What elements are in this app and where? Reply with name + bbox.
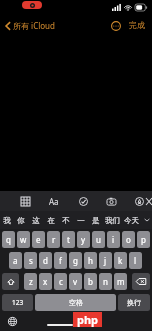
button[interactable]: Aa — [46, 193, 62, 210]
staticText: a — [13, 255, 18, 266]
staticText: 一 — [77, 216, 85, 225]
staticText: 在 — [47, 216, 55, 225]
staticText: 空格 — [69, 298, 83, 307]
button[interactable]: a — [9, 252, 22, 269]
button[interactable]: 我 — [0, 211, 14, 229]
button[interactable]: Close — [146, 194, 152, 208]
button[interactable]: Switch keyboard — [6, 315, 18, 327]
button[interactable]: 今天 — [122, 211, 141, 229]
button[interactable]: r — [47, 231, 60, 248]
button[interactable]: t — [62, 231, 75, 248]
staticText: z — [29, 276, 33, 287]
button[interactable]: s — [24, 252, 37, 269]
staticText: 你 — [17, 216, 25, 225]
button[interactable]: 我们 — [103, 211, 122, 229]
button[interactable]: 这 — [28, 211, 43, 229]
button[interactable]: y — [77, 231, 90, 248]
button[interactable]: p — [137, 231, 150, 248]
button[interactable]: g — [69, 252, 82, 269]
staticText: u — [96, 234, 101, 245]
button[interactable]: m — [114, 273, 127, 290]
staticText: 我 — [3, 216, 11, 225]
button[interactable]: w — [17, 231, 30, 248]
staticText: 所有 iCloud — [13, 20, 55, 31]
button[interactable]: j — [99, 252, 112, 269]
staticText: l — [134, 255, 137, 266]
button[interactable]: l — [129, 252, 142, 269]
button[interactable]: More options — [109, 19, 122, 32]
staticText: j — [104, 255, 107, 266]
staticText: 完成 — [129, 20, 145, 30]
staticText: w — [20, 234, 27, 245]
button[interactable]: Shift — [2, 273, 19, 290]
staticText: c — [59, 276, 63, 287]
button[interactable]: Backspace — [132, 273, 150, 290]
button[interactable]: x — [39, 273, 52, 290]
staticText: e — [36, 234, 41, 245]
button[interactable]: f — [54, 252, 67, 269]
button[interactable]: Table — [18, 194, 32, 208]
button[interactable]: Camera — [104, 194, 118, 208]
button[interactable]: Checklist — [76, 194, 90, 208]
staticText: n — [103, 276, 108, 287]
staticText: f — [59, 255, 62, 266]
button[interactable]: 在 — [43, 211, 58, 229]
other: php logo — [73, 312, 102, 327]
button[interactable]: 完成 — [127, 18, 147, 32]
staticText: y — [81, 234, 86, 245]
staticText: 换行 — [127, 298, 141, 307]
staticText: t — [67, 234, 70, 245]
staticText: 是 — [92, 216, 100, 225]
button[interactable]: u — [92, 231, 105, 248]
button[interactable]: c — [54, 273, 67, 290]
staticText: i — [112, 234, 115, 245]
staticText: o — [126, 234, 131, 245]
staticText: h — [88, 255, 93, 266]
button[interactable]: k — [114, 252, 127, 269]
button[interactable]: q — [2, 231, 15, 248]
button[interactable]: Expand suggestions — [141, 211, 152, 229]
button[interactable]: e — [32, 231, 45, 248]
other: Recording indicator — [22, 1, 42, 9]
staticText: q — [6, 234, 11, 245]
staticText: Aa — [49, 196, 59, 207]
button[interactable]: 空格 — [35, 294, 116, 311]
staticText: x — [43, 276, 48, 287]
button[interactable]: Markup — [132, 194, 146, 208]
button[interactable]: 不 — [58, 211, 73, 229]
button[interactable]: 一 — [73, 211, 88, 229]
button[interactable]: 是 — [88, 211, 103, 229]
button[interactable]: b — [84, 273, 97, 290]
staticText: 我们 — [105, 216, 120, 225]
staticText: s — [29, 255, 33, 266]
staticText: m — [117, 276, 125, 287]
staticText: d — [43, 255, 48, 266]
staticText: k — [118, 255, 123, 266]
staticText: b — [88, 276, 93, 287]
button[interactable]: z — [24, 273, 37, 290]
button[interactable]: v — [69, 273, 82, 290]
staticText: g — [73, 255, 78, 266]
button[interactable]: d — [39, 252, 52, 269]
staticText: p — [141, 234, 146, 245]
staticText: 今天 — [124, 216, 139, 225]
button[interactable]: i — [107, 231, 120, 248]
staticText: 123 — [12, 298, 24, 307]
button[interactable]: 123 — [2, 294, 33, 311]
staticText: php — [77, 312, 99, 327]
button[interactable]: o — [122, 231, 135, 248]
button[interactable]: 你 — [14, 211, 28, 229]
button[interactable]: n — [99, 273, 112, 290]
button[interactable]: 换行 — [118, 294, 150, 311]
staticText: r — [52, 234, 56, 245]
staticText: v — [73, 276, 78, 287]
staticText: 不 — [62, 216, 70, 225]
staticText: 这 — [32, 216, 40, 225]
button[interactable]: 所有 iCloud — [0, 18, 59, 33]
button[interactable]: h — [84, 252, 97, 269]
